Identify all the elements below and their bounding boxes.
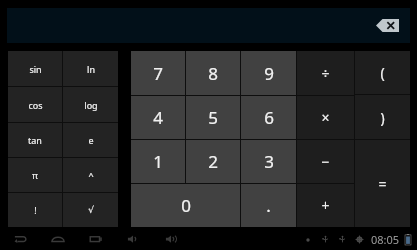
button[interactable]: 9 [241, 51, 296, 95]
staticText: tan [28, 134, 42, 146]
button[interactable]: ( [355, 51, 410, 94]
button[interactable]: Back [12, 231, 28, 247]
button[interactable]: ln [63, 51, 118, 86]
button[interactable]: 0 [131, 184, 240, 227]
staticText: 2 [208, 150, 218, 173]
staticText: ! [34, 204, 37, 216]
button[interactable]: ! [8, 193, 62, 227]
button[interactable]: 2 [186, 140, 240, 183]
button[interactable]: = [355, 140, 410, 227]
button[interactable]: 6 [241, 96, 296, 139]
button[interactable]: 3 [241, 140, 296, 183]
button[interactable]: cos [8, 87, 62, 122]
staticText: sin [29, 63, 42, 75]
button[interactable]: 4 [131, 96, 185, 139]
button[interactable]: ) [355, 95, 410, 139]
button[interactable]: + [297, 184, 354, 227]
staticText: ^ [88, 169, 94, 181]
staticText: 7 [153, 62, 163, 85]
staticText: + [321, 196, 330, 215]
staticText: = [378, 174, 387, 193]
staticText: 08:05 [371, 232, 400, 247]
button[interactable]: sin [8, 51, 62, 86]
staticText: 6 [264, 106, 274, 129]
staticText: √ [88, 205, 94, 215]
staticText: 5 [208, 106, 218, 129]
button[interactable]: × [297, 96, 354, 139]
staticText: 1 [153, 150, 163, 173]
staticText: 9 [264, 62, 274, 85]
button[interactable]: Delete [376, 19, 399, 32]
staticText: 3 [264, 150, 274, 173]
staticText: log [84, 99, 98, 111]
button[interactable]: 5 [186, 96, 240, 139]
staticText: π [32, 169, 38, 181]
staticText: 0 [181, 194, 191, 217]
button[interactable]: . [241, 184, 296, 227]
staticText: ÷ [321, 64, 330, 83]
staticText: e [88, 134, 94, 146]
button[interactable]: Home [50, 231, 66, 247]
button[interactable]: 8 [186, 51, 240, 95]
button[interactable]: ÷ [297, 51, 354, 95]
button[interactable]: Delete [7, 8, 410, 43]
staticText: 8 [208, 62, 218, 85]
button[interactable]: tan [8, 123, 62, 157]
button[interactable]: e [63, 123, 118, 157]
staticText: × [321, 108, 330, 127]
button[interactable]: π [8, 158, 62, 192]
button[interactable]: log [63, 87, 118, 122]
button[interactable]: √ [63, 193, 118, 227]
button[interactable]: Volume down [126, 231, 142, 247]
button[interactable]: 7 [131, 51, 185, 95]
button[interactable]: ^ [63, 158, 118, 192]
staticText: ln [87, 63, 95, 75]
staticText: ) [380, 108, 385, 127]
button[interactable]: Volume up [164, 231, 180, 247]
staticText: . [266, 194, 271, 217]
staticText: cos [28, 99, 43, 111]
staticText: ( [380, 63, 385, 82]
staticText: 4 [153, 106, 163, 129]
staticText: − [321, 152, 330, 171]
button[interactable]: Recents [88, 231, 104, 247]
button[interactable]: 1 [131, 140, 185, 183]
button[interactable]: − [297, 140, 354, 183]
